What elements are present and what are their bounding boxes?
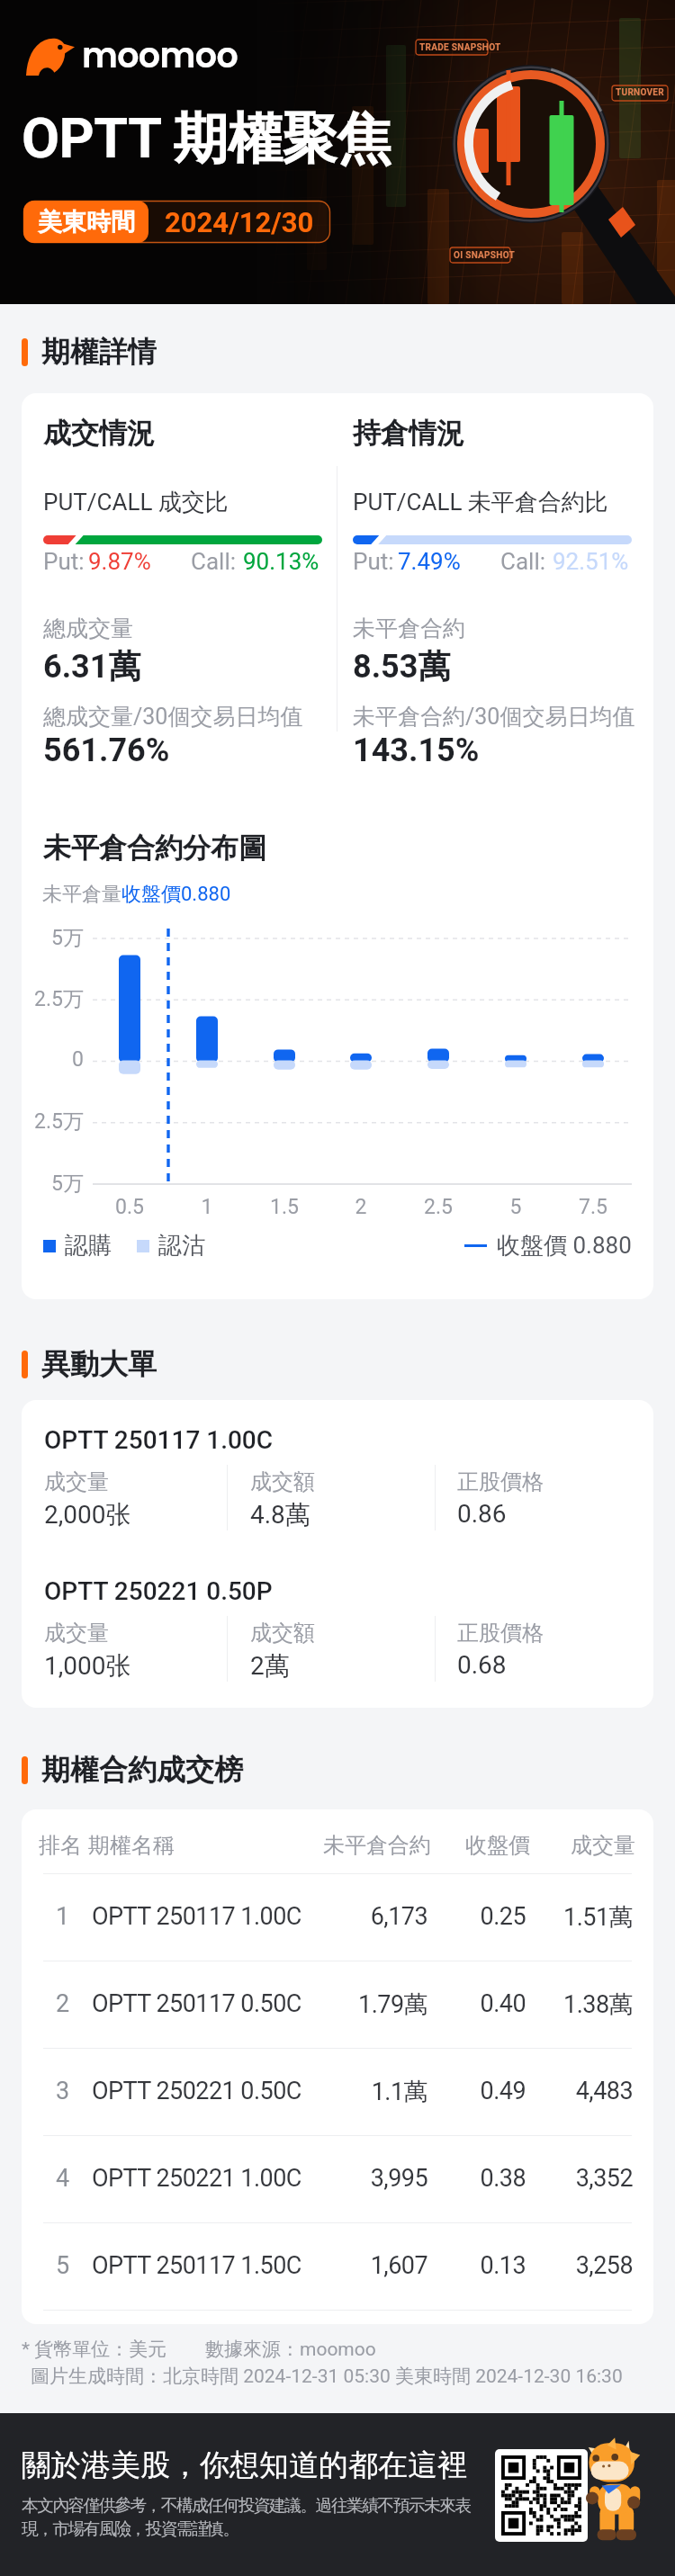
staticText: 5万 — [22, 1171, 84, 1197]
staticText: 1,000张 — [44, 1650, 131, 1682]
button[interactable] — [22, 2135, 653, 2222]
staticText: 2,000张 — [44, 1499, 131, 1530]
staticText: 9.87% — [88, 548, 151, 575]
staticText: 8.53萬 — [353, 646, 451, 687]
staticText: PUT/CALL 未平倉合約比 — [353, 488, 608, 517]
staticText: 未平倉合約分布圖 — [43, 830, 266, 866]
staticText: 關於港美股，你想知道的都在這裡 — [22, 2446, 467, 2484]
staticText: OPTT 期權聚焦 — [22, 104, 391, 174]
staticText: 正股價格 — [457, 1620, 544, 1647]
staticText: 期權詳情 — [41, 334, 157, 370]
staticText: 4,483 — [532, 2077, 633, 2105]
staticText: 5 — [489, 1195, 543, 1219]
staticText: 2萬 — [250, 1650, 290, 1682]
staticText: 0.5 — [103, 1195, 157, 1219]
staticText: 0.25 — [427, 1902, 526, 1931]
staticText: OPTT 250221 0.50C — [92, 2077, 301, 2105]
staticText: 美東時間 — [38, 207, 135, 238]
staticText: 92.51% — [553, 548, 629, 575]
staticText: 成交情況 — [43, 416, 155, 451]
staticText: 收盤價 0.880 — [497, 1231, 632, 1261]
staticText: 排名 — [39, 1832, 82, 1859]
staticText: OPTT 250117 1.00C — [44, 1425, 274, 1455]
staticText: 6,173 — [292, 1902, 427, 1931]
staticText: OPTT 250117 1.50C — [92, 2251, 301, 2280]
staticText: 未平倉量 — [42, 882, 121, 907]
staticText: 成交額 — [250, 1468, 315, 1495]
staticText: 1 — [180, 1195, 234, 1219]
staticText: 0 — [22, 1047, 84, 1072]
staticText: 3 — [38, 2077, 87, 2105]
staticText: 7.49% — [398, 548, 461, 575]
button[interactable]: 美東時間 — [23, 201, 330, 243]
button[interactable]: QR code — [495, 2449, 588, 2542]
staticText: 2.5 — [411, 1195, 465, 1219]
staticText: 成交額 — [250, 1620, 315, 1647]
staticText: 成交量 — [44, 1620, 109, 1647]
staticText: 認購 — [65, 1231, 112, 1261]
staticText: 正股價格 — [457, 1468, 544, 1495]
staticText: OPTT 250117 0.50C — [92, 1989, 301, 2018]
staticText: 2 — [334, 1195, 388, 1219]
staticText: 5万 — [22, 925, 84, 951]
button[interactable] — [22, 1873, 653, 1961]
staticText: OPTT 250221 1.00C — [92, 2164, 301, 2193]
staticText: Call: — [500, 548, 546, 575]
staticText: 異動大單 — [41, 1346, 157, 1382]
staticText: 1.79萬 — [292, 1989, 427, 2020]
staticText: 0.38 — [427, 2164, 526, 2193]
staticText: 3,258 — [532, 2251, 633, 2280]
staticText: 總成交量/30個交易日均值 — [43, 703, 303, 731]
staticText: 成交量 — [44, 1468, 109, 1495]
button[interactable]: moomoo — [26, 31, 238, 79]
button[interactable]: 期權詳情 — [22, 334, 157, 370]
staticText: 未平倉合約 — [296, 1832, 431, 1859]
staticText: 持倉情況 — [353, 416, 464, 451]
staticText: 成交量 — [535, 1832, 635, 1859]
staticText: 1,607 — [292, 2251, 427, 2280]
staticText: 總成交量 — [43, 615, 133, 642]
staticText: moomoo — [82, 31, 238, 79]
staticText: 1.38萬 — [532, 1989, 633, 2020]
staticText: 收盤價 — [431, 1832, 530, 1859]
staticText: 未平倉合約/30個交易日均值 — [353, 703, 635, 731]
button[interactable]: 異動大單 — [22, 1346, 157, 1382]
staticText: 4 — [38, 2164, 87, 2193]
staticText: 0.13 — [427, 2251, 526, 2280]
staticText: 1 — [38, 1902, 87, 1931]
staticText: 未平倉合約 — [353, 615, 465, 642]
staticText: 1.1萬 — [292, 2077, 427, 2107]
staticText: 認沽 — [158, 1231, 205, 1261]
staticText: 5 — [38, 2251, 87, 2280]
button[interactable] — [22, 2048, 653, 2135]
staticText: 本文內容僅供參考，不構成任何投資建議。過往業績不預示未來表 — [22, 2495, 471, 2517]
staticText: 期權名稱 — [88, 1832, 175, 1859]
staticText: 數據來源：moomoo — [205, 2338, 376, 2361]
staticText: 1.5 — [257, 1195, 311, 1219]
staticText: 收盤價0.880 — [121, 882, 231, 907]
staticText: 3,995 — [292, 2164, 427, 2193]
staticText: 143.15% — [353, 732, 480, 769]
staticText: Put: — [43, 548, 85, 575]
staticText: 7.5 — [566, 1195, 620, 1219]
button[interactable] — [22, 1961, 653, 2048]
button[interactable]: 期權合約成交榜 — [22, 1752, 243, 1788]
staticText: 6.31萬 — [43, 646, 141, 687]
staticText: 2.5万 — [22, 1108, 84, 1135]
staticText: 圖片生成時間：北京時間 2024-12-31 05:30 美東時間 2024-1… — [31, 2365, 623, 2388]
staticText: 現，市場有風險，投資需謹慎。 — [22, 2518, 238, 2540]
staticText: OPTT 250117 1.00C — [92, 1902, 301, 1931]
staticText: TURNOVER — [616, 87, 665, 98]
staticText: 0.86 — [457, 1499, 507, 1529]
staticText: 2024/12/30 — [165, 206, 314, 238]
button[interactable] — [22, 2222, 653, 2310]
staticText: OPTT 250221 0.50P — [44, 1576, 273, 1606]
staticText: PUT/CALL 成交比 — [43, 488, 229, 517]
staticText: 期權合約成交榜 — [41, 1752, 243, 1788]
staticText: 2 — [38, 1989, 87, 2018]
staticText: Put: — [353, 548, 394, 575]
staticText: 0.40 — [427, 1989, 526, 2018]
staticText: OI SNAPSHOT — [454, 250, 516, 261]
staticText: 3,352 — [532, 2164, 633, 2193]
staticText: Call: — [191, 548, 237, 575]
